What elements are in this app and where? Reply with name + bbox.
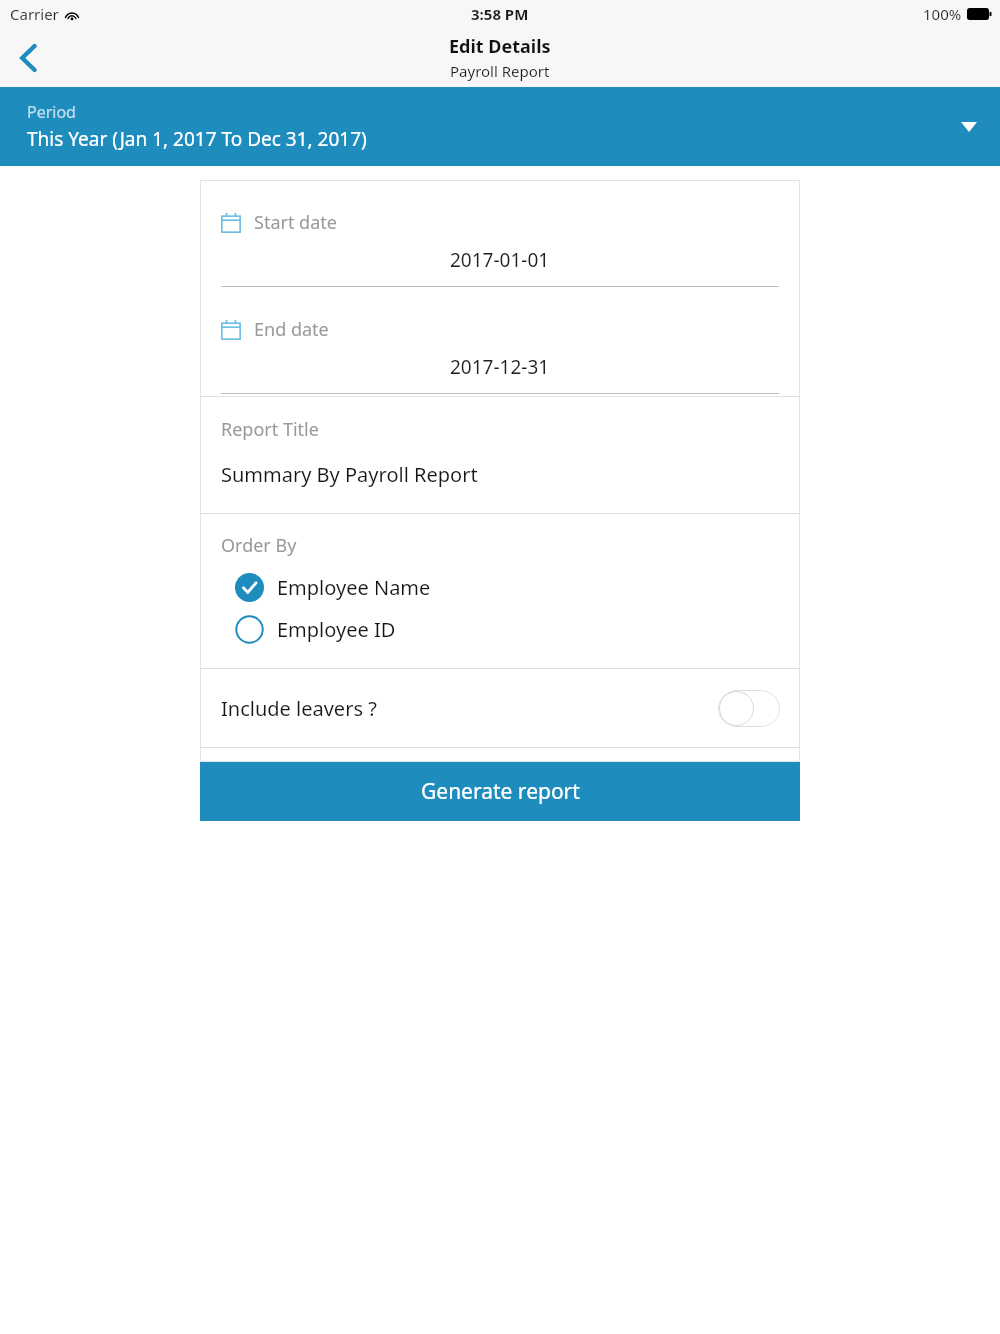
staticText: Order By xyxy=(221,533,297,558)
button[interactable]: Employee Name xyxy=(200,570,800,605)
staticText: 3:58 PM xyxy=(471,4,529,24)
staticText: 2017-12-31 xyxy=(450,354,550,380)
button[interactable]: Period xyxy=(0,87,1000,166)
button[interactable]: Generate report xyxy=(200,762,800,821)
staticText: Employee Name xyxy=(277,574,431,601)
staticText: Edit Details xyxy=(449,34,551,59)
button[interactable]: Include leavers ? xyxy=(200,669,800,747)
staticText: This Year (Jan 1, 2017 To Dec 31, 2017) xyxy=(27,126,367,152)
staticText: 100% xyxy=(923,4,962,24)
staticText: End date xyxy=(254,317,329,342)
staticText: Report Title xyxy=(221,417,319,442)
button[interactable]: End date xyxy=(221,317,800,342)
button[interactable]: Back xyxy=(0,29,58,87)
staticText: Summary By Payroll Report xyxy=(221,461,478,488)
staticText: Start date xyxy=(254,210,337,235)
button[interactable]: Report Title xyxy=(200,397,800,513)
staticText: Payroll Report xyxy=(450,61,550,81)
staticText: 2017-01-01 xyxy=(450,247,550,273)
staticText: Period xyxy=(27,101,76,123)
staticText: Employee ID xyxy=(277,616,396,643)
staticText: Include leavers ? xyxy=(221,695,377,722)
staticText: Generate report xyxy=(421,777,580,806)
button[interactable]: Employee ID xyxy=(200,612,800,647)
staticText: Carrier xyxy=(10,4,59,24)
button[interactable]: Start date xyxy=(221,210,800,235)
other: Change period xyxy=(961,122,977,132)
